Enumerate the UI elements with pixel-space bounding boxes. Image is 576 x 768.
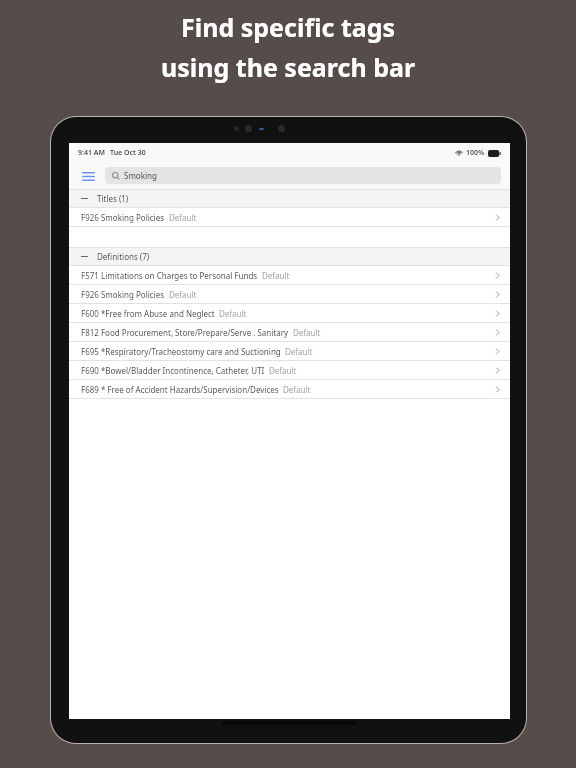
staticText: Default bbox=[269, 365, 297, 376]
staticText: 100% bbox=[466, 148, 485, 158]
button[interactable]: F695 *Respiratory/Tracheostomy care and … bbox=[69, 342, 510, 360]
staticText: Smoking bbox=[124, 170, 157, 181]
staticText: Default bbox=[169, 289, 197, 300]
staticText: F571 Limitations on Charges to Personal … bbox=[81, 270, 258, 281]
button[interactable]: F600 *Free from Abuse and Neglect bbox=[69, 304, 510, 322]
staticText: Default bbox=[293, 327, 321, 338]
staticText: F812 Food Procurement, Store/Prepare/Ser… bbox=[81, 327, 289, 338]
staticText: Default bbox=[283, 384, 311, 395]
button[interactable]: F926 Smoking Policies bbox=[69, 285, 510, 303]
staticText: F600 *Free from Abuse and Neglect bbox=[81, 308, 215, 319]
button[interactable]: Titles (1) bbox=[69, 190, 510, 207]
button[interactable]: Smoking bbox=[105, 167, 501, 184]
button[interactable]: F690 *Bowel/Bladder Incontinence, Cathet… bbox=[69, 361, 510, 379]
staticText: Tue Oct 30 bbox=[110, 148, 146, 158]
staticText: F695 *Respiratory/Tracheostomy care and … bbox=[81, 346, 281, 357]
button[interactable]: Menu bbox=[78, 166, 98, 186]
staticText: F926 Smoking Policies bbox=[81, 212, 165, 223]
staticText: F689 * Free of Accident Hazards/Supervis… bbox=[81, 384, 279, 395]
staticText: F926 Smoking Policies bbox=[81, 289, 165, 300]
staticText: using the search bar bbox=[161, 50, 416, 84]
staticText: F690 *Bowel/Bladder Incontinence, Cathet… bbox=[81, 365, 265, 376]
staticText: Default bbox=[219, 308, 247, 319]
button[interactable]: Definitions (7) bbox=[69, 248, 510, 265]
button[interactable]: F812 Food Procurement, Store/Prepare/Ser… bbox=[69, 323, 510, 341]
staticText: Definitions (7) bbox=[97, 251, 150, 262]
button[interactable]: F689 * Free of Accident Hazards/Supervis… bbox=[69, 380, 510, 398]
staticText: Default bbox=[262, 270, 290, 281]
staticText: Default bbox=[169, 212, 197, 223]
staticText: Default bbox=[285, 346, 313, 357]
staticText: Find specific tags bbox=[181, 10, 396, 44]
staticText: Titles (1) bbox=[97, 193, 129, 204]
staticText: 9:41 AM bbox=[78, 148, 105, 158]
button[interactable]: F926 Smoking Policies bbox=[69, 208, 510, 226]
button[interactable]: F571 Limitations on Charges to Personal … bbox=[69, 266, 510, 284]
